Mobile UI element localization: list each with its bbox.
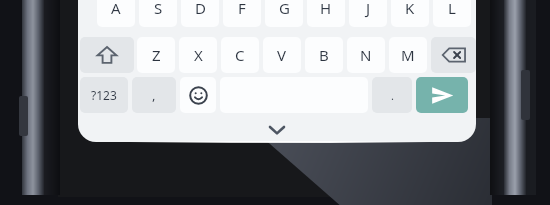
button[interactable]: . [372,77,412,113]
staticText: A [111,0,121,18]
staticText: , [152,86,156,104]
button[interactable]: Backspace [431,37,476,73]
button[interactable]: D [181,0,219,27]
button[interactable]: B [305,37,343,73]
staticText: K [405,0,415,18]
button[interactable]: ?123 [80,77,128,113]
button[interactable]: G [265,0,303,27]
button[interactable]: C [221,37,259,73]
button[interactable]: V [263,37,301,73]
button[interactable]: H [307,0,345,27]
button[interactable]: K [391,0,429,27]
button[interactable]: Hide keyboard [264,120,290,140]
staticText: Z [152,45,161,65]
staticText: J [366,0,371,18]
staticText: H [320,0,332,18]
staticText: B [319,45,329,65]
button[interactable]: X [179,37,217,73]
staticText: S [154,0,163,18]
button[interactable]: Emoji [180,77,216,113]
staticText: V [277,45,287,65]
button[interactable]: M [389,37,427,73]
button[interactable]: N [347,37,385,73]
button[interactable]: F [223,0,261,27]
staticText: C [235,45,245,65]
button[interactable]: S [139,0,177,27]
button[interactable]: J [349,0,387,27]
staticText: D [195,0,206,18]
button[interactable]: Z [137,37,175,73]
button[interactable]: Volume button [19,96,28,136]
button[interactable]: L [433,0,471,27]
staticText: G [279,0,290,18]
staticText: ?123 [91,87,117,103]
button[interactable]: Send [416,77,468,113]
staticText: M [401,45,415,65]
button[interactable]: , [132,77,176,113]
staticText: L [448,0,456,18]
staticText: X [194,45,203,65]
staticText: F [238,0,246,18]
staticText: N [360,45,372,65]
button[interactable]: Shift [80,37,134,73]
staticText: . [391,88,394,103]
button[interactable]: A [97,0,135,27]
